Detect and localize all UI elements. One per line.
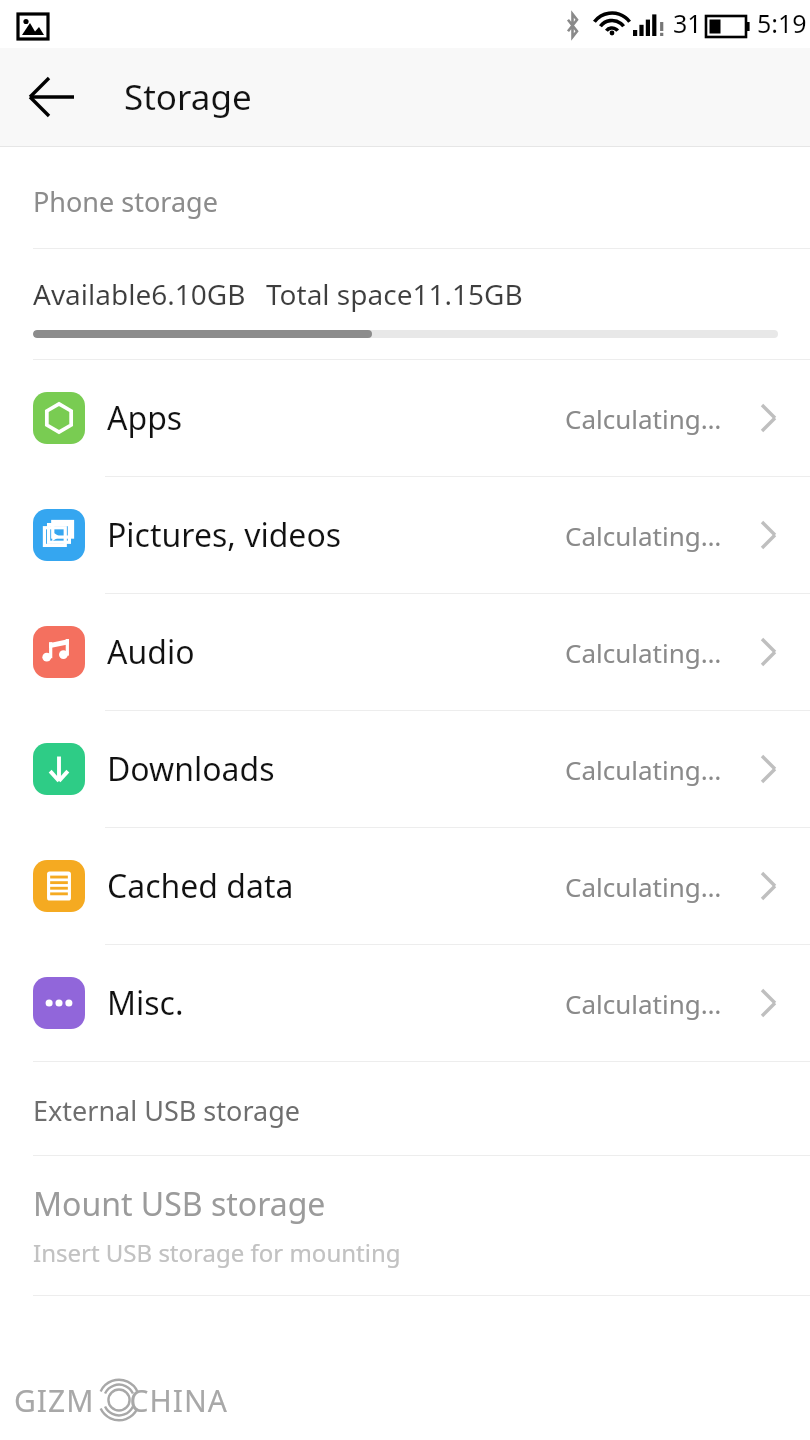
staticText: Total space11.15GB [266, 275, 523, 313]
button[interactable]: Cached data [0, 828, 810, 944]
staticText: 5:19 [757, 6, 807, 40]
staticText: Mount USB storage [33, 1182, 326, 1226]
staticText: Available6.10GB [33, 275, 246, 313]
button[interactable]: Mount USB storage [0, 1156, 810, 1295]
staticText: Calculating… [565, 752, 722, 787]
staticText: Apps [107, 396, 183, 440]
staticText: Calculating… [565, 401, 722, 436]
button[interactable]: Downloads [0, 711, 810, 827]
staticText: 31 [673, 6, 702, 40]
staticText: Insert USB storage for mounting [33, 1236, 401, 1269]
staticText: Cached data [107, 864, 294, 908]
staticText: Calculating… [565, 869, 722, 904]
staticText: Pictures, videos [107, 513, 342, 557]
staticText: External USB storage [33, 1092, 300, 1129]
staticText: GIZM CHINA [14, 1380, 228, 1421]
staticText: Calculating… [565, 635, 722, 670]
button[interactable]: Audio [0, 594, 810, 710]
staticText: Calculating… [565, 986, 722, 1021]
staticText: Phone storage [33, 183, 218, 220]
button[interactable]: Pictures, videos [0, 477, 810, 593]
staticText: Audio [107, 630, 195, 674]
button[interactable]: Misc. [0, 945, 810, 1061]
staticText: Storage [124, 73, 252, 121]
button[interactable]: Back [20, 64, 86, 130]
staticText: Downloads [107, 747, 275, 791]
staticText: Misc. [107, 981, 184, 1025]
staticText: Calculating… [565, 518, 722, 553]
button[interactable]: Apps [0, 360, 810, 476]
